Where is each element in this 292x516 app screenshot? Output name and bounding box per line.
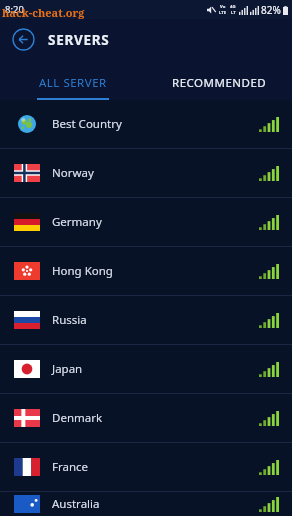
staticText: Norway	[52, 165, 259, 181]
button[interactable]: Norway	[0, 149, 292, 197]
staticText: Vo	[220, 4, 226, 10]
staticText: 8:20	[5, 3, 24, 16]
staticText: Hong Kong	[52, 263, 259, 279]
staticText: Denmark	[52, 410, 259, 426]
button[interactable]: Hong Kong	[0, 247, 292, 295]
staticText: ALL SERVER	[39, 75, 107, 91]
button[interactable]: Back	[12, 28, 35, 51]
staticText: Best Country	[52, 116, 259, 132]
staticText: Japan	[52, 361, 259, 377]
button[interactable]: Germany	[0, 198, 292, 246]
button[interactable]: Best Country	[0, 100, 292, 148]
staticText: France	[52, 459, 259, 475]
button[interactable]: Russia	[0, 296, 292, 344]
button[interactable]: ALL SERVER	[0, 60, 146, 100]
button[interactable]: Denmark	[0, 394, 292, 442]
staticText: Germany	[52, 214, 259, 230]
button[interactable]: RECOMMENDED	[146, 60, 292, 100]
staticText: 4G	[230, 4, 236, 10]
button[interactable]: Australia	[0, 492, 292, 516]
button[interactable]: Japan	[0, 345, 292, 393]
staticText: Russia	[52, 312, 259, 328]
staticText: LTE	[219, 10, 227, 16]
staticText: Australia	[52, 496, 259, 512]
button[interactable]: France	[0, 443, 292, 491]
staticText: LT	[231, 10, 236, 16]
staticText: 82%	[261, 3, 281, 17]
staticText: RECOMMENDED	[172, 75, 267, 91]
staticText: SERVERS	[48, 31, 110, 49]
staticText: hack-cheat.org	[2, 5, 85, 19]
